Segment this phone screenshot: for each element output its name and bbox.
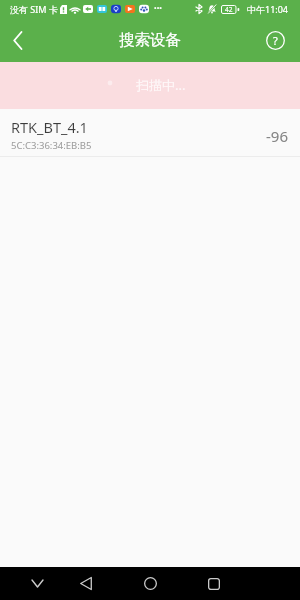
- staticText: RTK_BT_4.1: [11, 117, 88, 137]
- button[interactable]: Back: [54, 567, 118, 600]
- button[interactable]: Home: [118, 567, 182, 600]
- button[interactable]: Hide keyboard: [0, 567, 74, 600]
- staticText: 扫描中...: [136, 76, 186, 94]
- staticText: 中午11:04: [247, 3, 289, 15]
- button[interactable]: Back: [0, 18, 36, 62]
- staticText: 42: [225, 5, 233, 14]
- button[interactable]: Recents: [182, 567, 246, 600]
- staticText: 没有 SIM 卡: [10, 3, 58, 15]
- button[interactable]: Help: [251, 18, 300, 62]
- staticText: ?: [273, 33, 278, 48]
- button[interactable]: RTK_BT_4.1: [0, 109, 300, 157]
- staticText: -96: [266, 126, 288, 146]
- staticText: 搜索设备: [119, 30, 181, 50]
- staticText: •••: [154, 4, 162, 14]
- staticText: 5C:C3:36:34:EB:B5: [11, 139, 92, 152]
